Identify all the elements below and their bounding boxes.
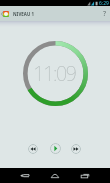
staticText: 6:29 xyxy=(99,0,109,6)
button[interactable]: Back xyxy=(0,6,4,21)
button[interactable]: Play xyxy=(50,143,61,154)
staticText: NIVEAU 1 xyxy=(13,11,35,17)
button[interactable]: Fast forward xyxy=(71,144,81,154)
staticText: 11:09 xyxy=(33,60,76,87)
button[interactable]: Back xyxy=(13,168,35,183)
button[interactable]: Home xyxy=(44,168,66,183)
button[interactable]: Rewind xyxy=(28,144,38,154)
button[interactable]: Help xyxy=(99,6,110,21)
button[interactable]: Recents xyxy=(74,168,96,183)
staticText: ? xyxy=(103,9,107,19)
